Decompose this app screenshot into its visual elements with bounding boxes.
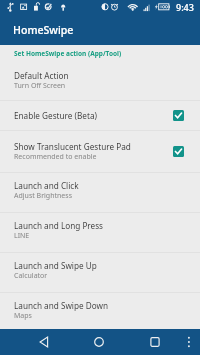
staticText: Maps bbox=[14, 311, 32, 321]
staticText: Launch and Swipe Down bbox=[14, 300, 109, 311]
staticText: Default Action bbox=[14, 70, 69, 81]
button[interactable]: Recents bbox=[141, 329, 169, 355]
staticText: Recommended to enable bbox=[14, 152, 97, 162]
button[interactable]: Enabled bbox=[173, 146, 184, 157]
staticText: Launch and Click bbox=[14, 180, 79, 191]
button[interactable]: Launch and Swipe Up bbox=[0, 253, 200, 292]
staticText: Set HomeSwipe action (App/Tool) bbox=[14, 49, 122, 58]
staticText: HomeSwipe bbox=[13, 23, 74, 37]
button[interactable]: Launch and Swipe Down bbox=[0, 293, 200, 329]
staticText: Enable Gesture (Beta) bbox=[14, 110, 97, 121]
staticText: Adjust Brightness bbox=[14, 191, 72, 201]
button[interactable]: Launch and Click bbox=[0, 173, 200, 212]
button[interactable]: Show Translucent Gesture Pad bbox=[0, 131, 200, 172]
staticText: Show Translucent Gesture Pad bbox=[14, 141, 131, 152]
staticText: 9:43 bbox=[176, 1, 194, 13]
button[interactable]: Enable Gesture (Beta) bbox=[0, 101, 200, 130]
button[interactable]: Enabled bbox=[173, 110, 184, 121]
button[interactable]: Launch and Long Press bbox=[0, 213, 200, 252]
button[interactable]: Back bbox=[30, 329, 58, 355]
staticText: Turn Off Screen bbox=[14, 81, 66, 91]
staticText: Launch and Swipe Up bbox=[14, 260, 97, 271]
staticText: Launch and Long Press bbox=[14, 220, 104, 231]
button[interactable]: More options bbox=[178, 329, 200, 355]
button[interactable]: Default Action bbox=[0, 62, 200, 100]
staticText: LINE bbox=[14, 231, 30, 241]
staticText: Calculator bbox=[14, 271, 48, 281]
button[interactable]: Home bbox=[85, 329, 113, 355]
